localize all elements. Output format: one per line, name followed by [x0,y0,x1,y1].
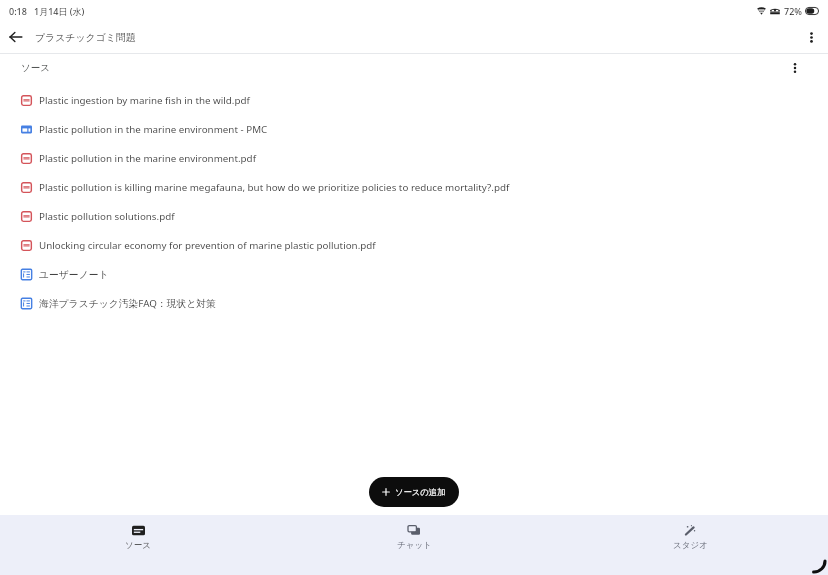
staticText: Plastic ingestion by marine fish in the … [39,94,250,107]
button[interactable]: ユーザーノート [0,260,828,289]
button[interactable]: Back [0,21,32,53]
staticText: Plastic pollution solutions.pdf [39,210,175,223]
staticText: 海洋プラスチック汚染FAQ：現状と対策 [39,297,216,310]
staticText: スタジオ [673,540,708,551]
staticText: ソース [21,62,50,74]
button[interactable]: Plastic pollution in the marine environm… [0,144,828,173]
button[interactable]: More options [795,21,827,53]
button[interactable]: チャット [276,515,552,556]
staticText: Unlocking circular economy for preventio… [39,239,376,252]
button[interactable]: スタジオ [552,515,828,556]
staticText: 72% [784,5,802,17]
button[interactable]: 海洋プラスチック汚染FAQ：現状と対策 [0,289,828,318]
button[interactable]: Plastic pollution solutions.pdf [0,202,828,231]
staticText: ソースの追加 [395,487,446,497]
staticText: Plastic pollution in the marine environm… [39,152,257,165]
staticText: 1月14日 (水) [34,5,85,17]
button[interactable]: Source options [784,57,806,79]
staticText: ソース [125,540,151,551]
staticText: Plastic pollution in the marine environm… [39,123,268,136]
button[interactable]: ソースの追加 [369,477,459,507]
button[interactable]: Unlocking circular economy for preventio… [0,231,828,260]
staticText: チャット [397,540,432,551]
staticText: ユーザーノート [39,269,109,281]
staticText: Plastic pollution is killing marine mega… [39,181,510,194]
button[interactable]: ソース [0,515,276,556]
button[interactable]: Plastic pollution is killing marine mega… [0,173,828,202]
button[interactable]: Plastic pollution in the marine environm… [0,115,828,144]
staticText: プラスチックゴミ問題 [35,31,136,43]
button[interactable]: Plastic ingestion by marine fish in the … [0,86,828,115]
staticText: 0:18 [9,5,27,17]
